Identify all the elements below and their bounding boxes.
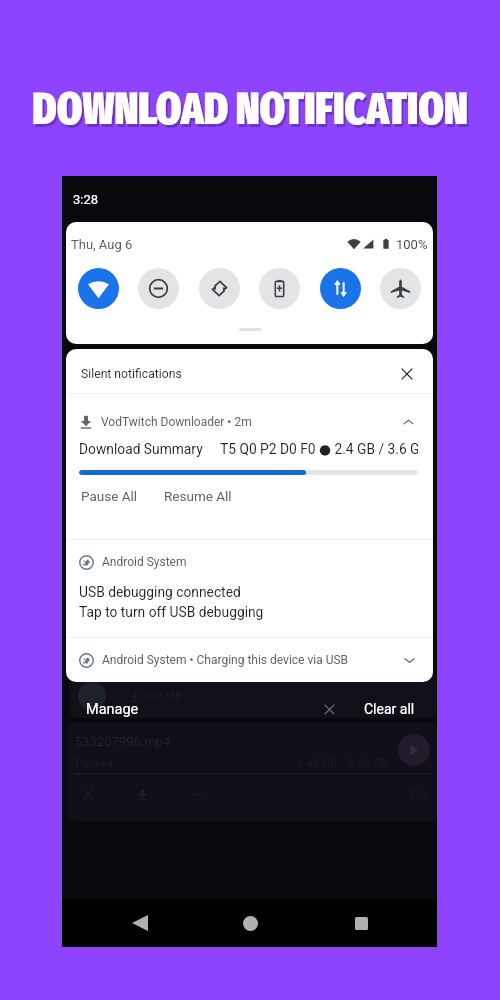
button[interactable]: Manage (86, 697, 139, 722)
staticText: Download Summary (79, 441, 203, 457)
staticText: 542 MB (144, 690, 182, 703)
button[interactable]: Android System • Charging this device vi… (66, 638, 433, 682)
staticText: 1.48 GB / 2.86 GB (297, 756, 388, 769)
button[interactable]: Cancel (78, 784, 98, 804)
staticText: 3:28 (73, 192, 99, 207)
button[interactable]: Mobile data (320, 268, 361, 309)
button[interactable]: Save (132, 784, 152, 804)
button[interactable]: Home (228, 901, 272, 945)
button[interactable]: Collapse notification (398, 412, 418, 432)
staticText: Tap to turn off USB debugging (79, 604, 264, 620)
staticText: Pause All (81, 488, 138, 504)
staticText: Paused (75, 756, 114, 769)
staticText: 100% (396, 237, 428, 252)
button[interactable]: Dismiss silent notifications (395, 362, 419, 386)
button[interactable]: Do not disturb (138, 268, 179, 309)
staticText: Manage (86, 701, 139, 718)
button[interactable]: Dismiss (318, 698, 340, 720)
staticText: 533207996.mp4 (75, 734, 171, 749)
button[interactable]: Wi-Fi (78, 268, 119, 309)
staticText: Thu, Aug 6 (71, 237, 133, 252)
button[interactable]: Airplane mode (380, 268, 421, 309)
staticText: Android System (102, 555, 187, 569)
staticText: USB debugging connected (79, 584, 241, 600)
button[interactable]: Silent notifications (66, 349, 433, 393)
button[interactable]: Android System (66, 540, 433, 637)
staticText: Silent notifications (81, 367, 182, 381)
button[interactable]: Pause All (79, 482, 140, 510)
staticText: DOWNLOAD NOTIFICATION (2, 86, 500, 139)
button[interactable]: Back (118, 901, 162, 945)
button[interactable]: Recent apps (339, 901, 383, 945)
button[interactable]: Clear all (364, 697, 415, 721)
button[interactable]: Resume download (398, 734, 430, 766)
staticText: Android System • Charging this device vi… (102, 653, 349, 667)
staticText: 51% (408, 788, 430, 801)
staticText: Resume All (164, 488, 232, 504)
staticText: Clear all (364, 701, 415, 717)
staticText: T5 Q0 P2 D0 F0 ● 2.4 GB / 3.6 G.. (220, 441, 418, 457)
staticText: DOWNLOAD NOTIFICATION (0, 83, 500, 136)
button[interactable]: Auto-rotate (199, 268, 240, 309)
staticText: VodTwitch Downloader • 2m (101, 415, 252, 429)
button[interactable]: Resume All (162, 482, 234, 510)
button[interactable]: Battery saver (259, 268, 300, 309)
